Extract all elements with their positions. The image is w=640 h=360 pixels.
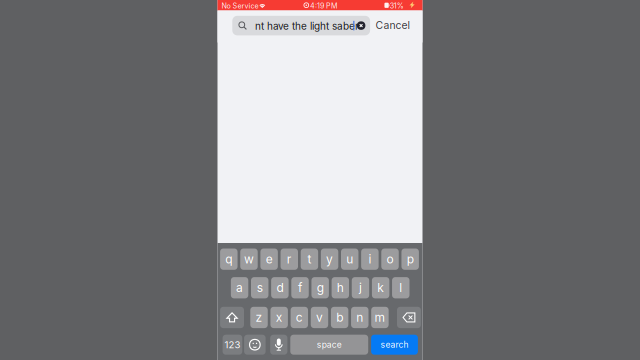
button[interactable]: e — [260, 248, 278, 270]
button[interactable]: m — [371, 307, 389, 328]
staticText: space — [317, 339, 342, 350]
button[interactable]: Emoji — [244, 335, 266, 355]
staticText: i — [368, 252, 371, 266]
staticText: k — [377, 280, 384, 295]
staticText: l — [399, 280, 402, 295]
button[interactable]: h — [332, 277, 349, 298]
button[interactable]: nt have the light saber — [232, 16, 370, 35]
staticText: t — [307, 252, 311, 266]
staticText: nt have the light saber — [255, 20, 359, 32]
button[interactable]: x — [270, 307, 288, 328]
button[interactable]: i — [361, 248, 378, 270]
button[interactable]: Cancel — [373, 18, 413, 32]
button[interactable]: t — [301, 248, 318, 270]
button[interactable]: Dictate — [270, 335, 287, 355]
button[interactable]: a — [231, 277, 248, 298]
staticText: h — [337, 280, 344, 295]
staticText: b — [336, 310, 343, 325]
staticText: 4:19 PM — [310, 2, 338, 10]
staticText: o — [386, 252, 393, 266]
staticText: g — [317, 280, 324, 295]
button[interactable]: search — [371, 335, 418, 355]
staticText: s — [257, 280, 263, 295]
staticText: n — [356, 310, 363, 325]
button[interactable]: z — [250, 307, 268, 328]
staticText: z — [255, 310, 262, 325]
staticText: x — [276, 310, 283, 325]
staticText: v — [316, 310, 323, 325]
button[interactable]: u — [341, 248, 358, 270]
staticText: search — [380, 339, 408, 350]
staticText: j — [359, 280, 362, 295]
button[interactable]: r — [281, 248, 298, 270]
staticText: m — [374, 310, 385, 325]
staticText: w — [244, 252, 254, 266]
staticText: r — [287, 252, 292, 266]
staticText: y — [326, 252, 333, 266]
staticText: No Service — [221, 2, 258, 10]
button[interactable]: q — [220, 248, 237, 270]
button[interactable]: space — [290, 335, 368, 355]
button[interactable]: d — [271, 277, 288, 298]
staticText: f — [298, 280, 302, 295]
button[interactable]: Shift — [220, 307, 244, 328]
button[interactable]: o — [381, 248, 399, 270]
button[interactable]: n — [351, 307, 368, 328]
button[interactable]: g — [311, 277, 329, 298]
staticText: c — [296, 310, 303, 325]
button[interactable]: s — [251, 277, 268, 298]
button[interactable]: l — [392, 277, 409, 298]
staticText: p — [407, 252, 414, 266]
button[interactable]: v — [311, 307, 328, 328]
staticText: Cancel — [375, 19, 410, 31]
staticText: e — [266, 252, 273, 266]
staticText: a — [236, 280, 243, 295]
staticText: 123 — [224, 339, 240, 350]
staticText: u — [346, 252, 353, 266]
button[interactable]: y — [321, 248, 338, 270]
button[interactable]: c — [291, 307, 308, 328]
button[interactable]: 123 — [223, 335, 242, 355]
button[interactable]: j — [352, 277, 369, 298]
button[interactable]: b — [331, 307, 348, 328]
button[interactable]: w — [240, 248, 258, 270]
button[interactable]: f — [291, 277, 309, 298]
staticText: q — [225, 252, 232, 266]
button[interactable]: k — [372, 277, 389, 298]
button[interactable]: p — [401, 248, 419, 270]
staticText: d — [276, 280, 283, 295]
button[interactable]: Delete — [397, 307, 421, 328]
staticText: 31% — [390, 2, 404, 10]
